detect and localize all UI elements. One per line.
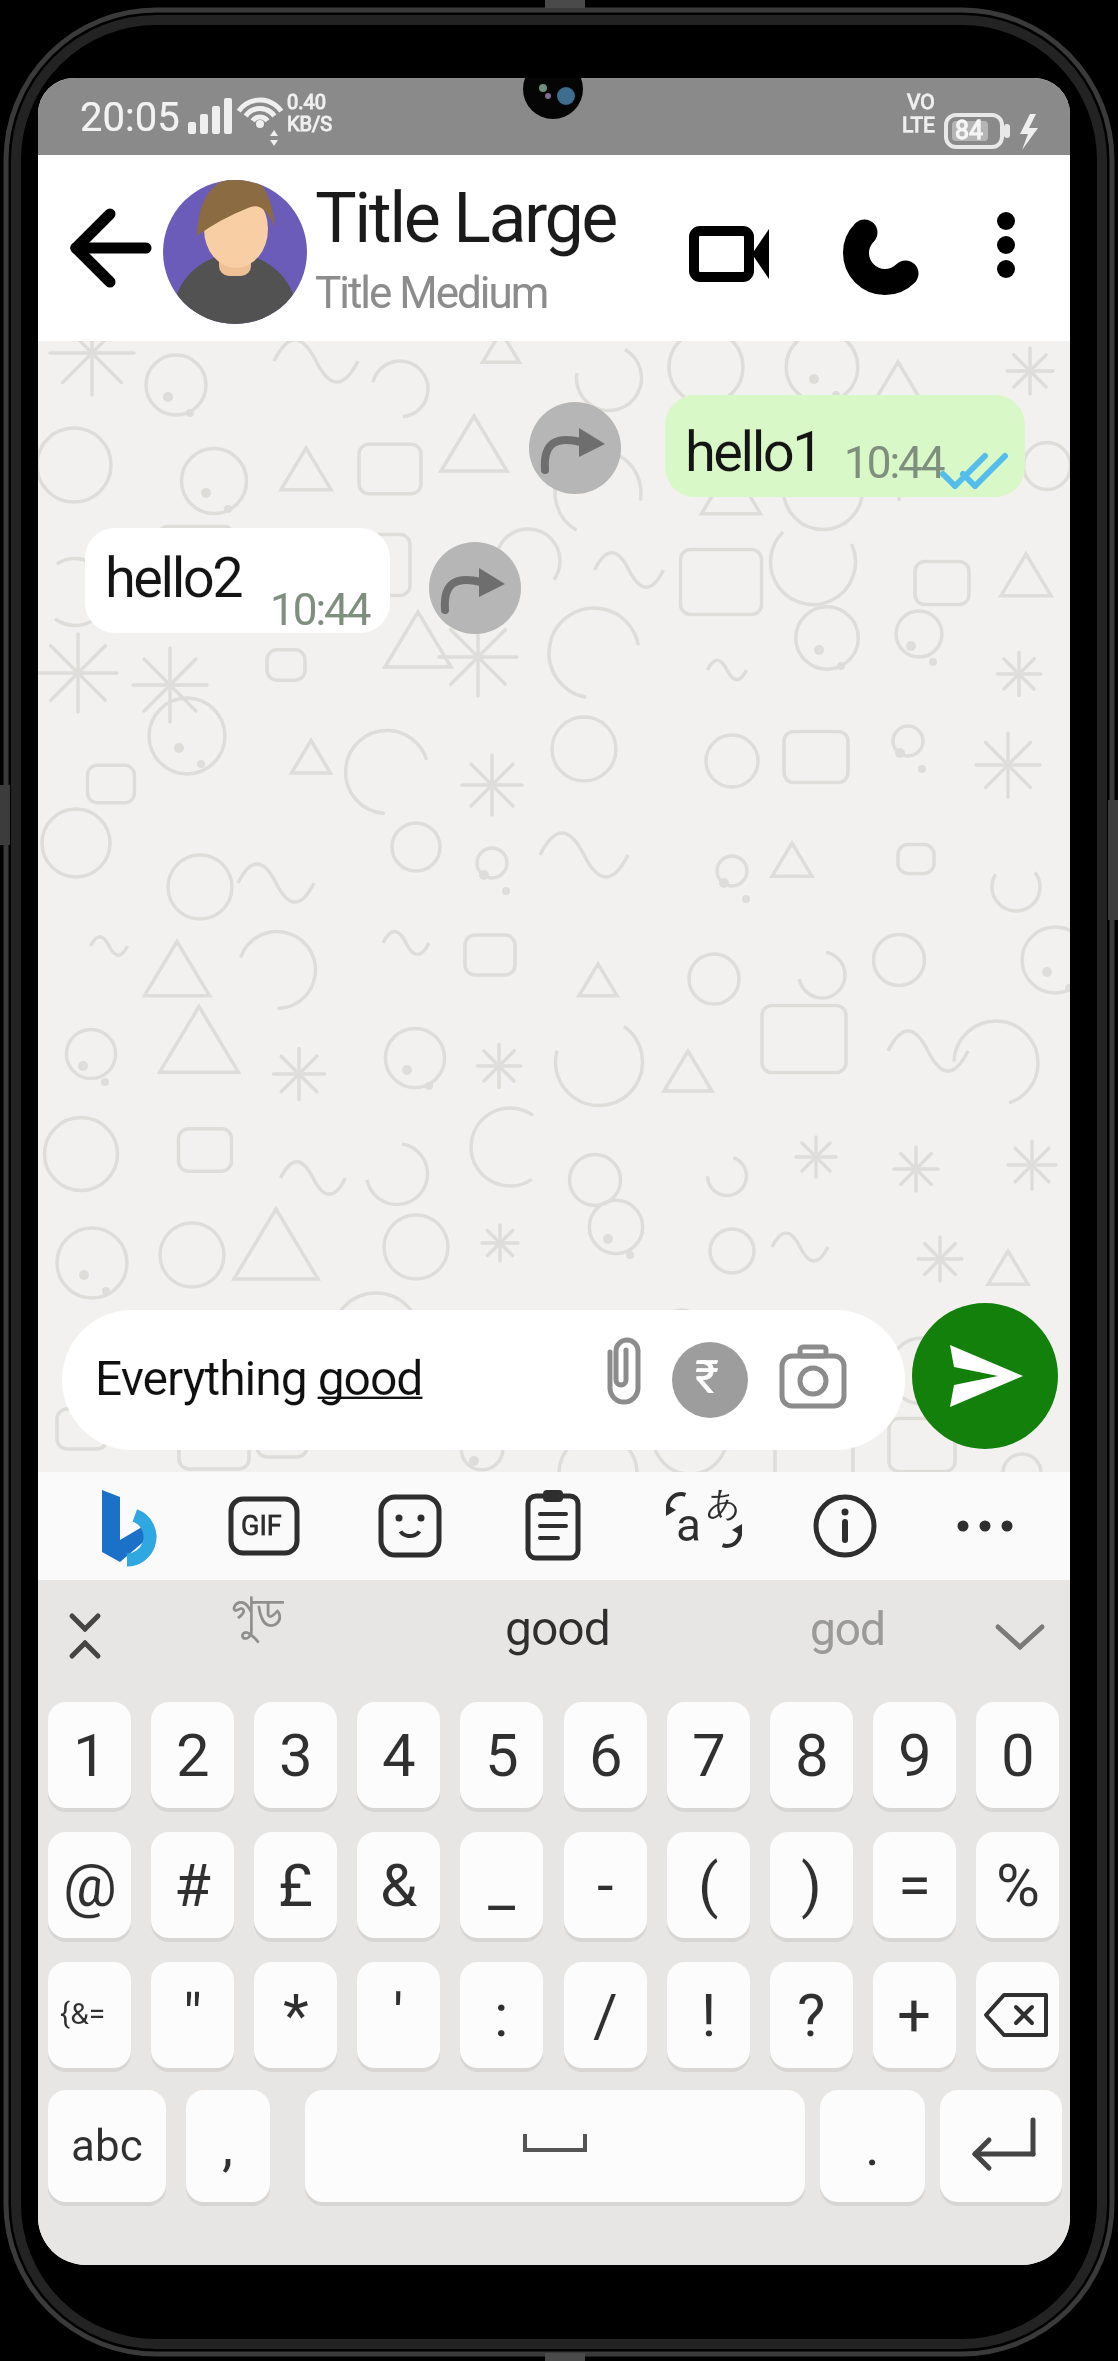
- button[interactable]: %: [976, 1832, 1059, 1938]
- staticText: Title Medium: [315, 267, 548, 319]
- button[interactable]: 0: [976, 1702, 1059, 1808]
- staticText: 9: [898, 1720, 932, 1790]
- button[interactable]: _: [460, 1832, 543, 1938]
- button[interactable]: ?: [770, 1962, 853, 2068]
- button[interactable]: [958, 203, 1048, 293]
- button[interactable]: [665, 395, 1025, 497]
- staticText: (: [698, 1850, 719, 1920]
- staticText: 20:05: [80, 94, 180, 141]
- staticText: .: [865, 2113, 880, 2179]
- staticText: 5: [485, 1720, 519, 1790]
- staticText: £: [278, 1850, 313, 1920]
- button[interactable]: 3: [254, 1702, 337, 1808]
- button[interactable]: abc: [48, 2090, 166, 2202]
- button[interactable]: &: [357, 1832, 440, 1938]
- staticText: あ: [706, 1482, 741, 1525]
- staticText: Everything good: [95, 1350, 423, 1406]
- button[interactable]: [80, 1478, 165, 1573]
- staticText: KB/S: [287, 112, 333, 135]
- button[interactable]: [85, 528, 390, 633]
- staticText: 1: [73, 1720, 107, 1790]
- staticText: hello2: [105, 545, 242, 611]
- button[interactable]: ': [357, 1962, 440, 2068]
- staticText: 0: [1001, 1720, 1035, 1790]
- staticText: GIF: [241, 1510, 282, 1542]
- button[interactable]: [48, 1962, 131, 2068]
- button[interactable]: [783, 1583, 913, 1693]
- button[interactable]: [912, 1303, 1058, 1449]
- button[interactable]: =: [873, 1832, 956, 1938]
- button[interactable]: [429, 542, 521, 634]
- button[interactable]: [64, 203, 159, 298]
- button[interactable]: 8: [770, 1702, 853, 1808]
- button[interactable]: [672, 1342, 748, 1418]
- staticText: ₹: [695, 1350, 719, 1404]
- staticText: 4: [382, 1720, 416, 1790]
- button[interactable]: [976, 1962, 1059, 2068]
- button[interactable]: [828, 203, 933, 308]
- button[interactable]: [800, 1478, 885, 1573]
- staticText: 0.40: [287, 90, 326, 113]
- button[interactable]: 1: [48, 1702, 131, 1808]
- button[interactable]: (: [667, 1832, 750, 1938]
- button[interactable]: ,: [186, 2090, 270, 2202]
- staticText: VO: [907, 90, 935, 115]
- button[interactable]: ": [151, 1962, 234, 2068]
- button[interactable]: £: [254, 1832, 337, 1938]
- button[interactable]: [512, 1478, 597, 1573]
- button[interactable]: 2: [151, 1702, 234, 1808]
- button[interactable]: [62, 1310, 905, 1450]
- button[interactable]: [656, 1478, 741, 1573]
- staticText: 7: [692, 1720, 726, 1790]
- staticText: ,: [222, 2113, 234, 2179]
- staticText: _: [488, 1850, 516, 1920]
- staticText: %: [996, 1850, 1040, 1920]
- staticText: গুড: [231, 1588, 284, 1640]
- staticText: 84: [955, 116, 984, 145]
- button[interactable]: 7: [667, 1702, 750, 1808]
- staticText: /: [593, 1980, 618, 2050]
- button[interactable]: :: [460, 1962, 543, 2068]
- staticText: =: [898, 1850, 931, 1920]
- staticText: +: [897, 1980, 932, 2050]
- staticText: hello1: [685, 419, 822, 485]
- staticText: 6: [589, 1720, 623, 1790]
- staticText: ?: [797, 1980, 826, 2050]
- button[interactable]: ): [770, 1832, 853, 1938]
- staticText: 2: [176, 1720, 210, 1790]
- button[interactable]: [305, 2090, 805, 2202]
- button[interactable]: #: [151, 1832, 234, 1938]
- button[interactable]: [163, 180, 307, 324]
- button[interactable]: .: [820, 2090, 925, 2202]
- button[interactable]: [468, 1583, 638, 1693]
- staticText: Title Large: [315, 177, 616, 259]
- button[interactable]: [78, 1583, 168, 1693]
- staticText: ': [393, 1980, 404, 2050]
- button[interactable]: [224, 1478, 309, 1573]
- staticText: *: [283, 1980, 309, 2050]
- staticText: abc: [71, 2120, 143, 2172]
- button[interactable]: !: [667, 1962, 750, 2068]
- button[interactable]: @: [48, 1832, 131, 1938]
- staticText: a: [676, 1498, 702, 1552]
- button[interactable]: 4: [357, 1702, 440, 1808]
- button[interactable]: [940, 2090, 1062, 2202]
- button[interactable]: /: [564, 1962, 647, 2068]
- button[interactable]: [368, 1478, 453, 1573]
- staticText: ): [801, 1850, 822, 1920]
- button[interactable]: -: [564, 1832, 647, 1938]
- button[interactable]: 9: [873, 1702, 956, 1808]
- button[interactable]: 6: [564, 1702, 647, 1808]
- staticText: 10:44: [844, 437, 944, 489]
- button[interactable]: [678, 203, 788, 313]
- staticText: god: [810, 1602, 886, 1656]
- button[interactable]: [944, 1478, 1029, 1573]
- staticText: 3: [279, 1720, 313, 1790]
- button[interactable]: [529, 402, 621, 494]
- button[interactable]: +: [873, 1962, 956, 2068]
- button[interactable]: 5: [460, 1702, 543, 1808]
- button[interactable]: *: [254, 1962, 337, 2068]
- staticText: 10:44: [270, 584, 370, 636]
- staticText: LTE: [902, 113, 935, 138]
- staticText: 8: [795, 1720, 829, 1790]
